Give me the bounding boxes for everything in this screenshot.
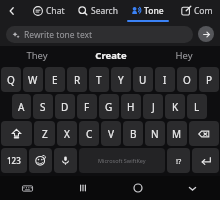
button[interactable]: Switch keyboard bbox=[0, 176, 55, 200]
button[interactable]: Enter bbox=[192, 148, 219, 173]
button[interactable]: Q bbox=[1, 67, 21, 92]
staticText: J bbox=[152, 100, 155, 114]
staticText: Search bbox=[91, 5, 118, 17]
staticText: L bbox=[194, 100, 200, 114]
button[interactable]: Search bbox=[73, 0, 122, 22]
button[interactable]: L bbox=[187, 94, 207, 119]
staticText: U bbox=[139, 73, 147, 87]
button[interactable]: Y bbox=[111, 67, 131, 92]
button[interactable]: Emoji bbox=[29, 148, 52, 173]
staticText: K bbox=[172, 100, 179, 114]
button[interactable]: Microphone bbox=[54, 148, 77, 173]
staticText: I bbox=[163, 73, 167, 87]
button[interactable]: P bbox=[199, 67, 219, 92]
staticText: T bbox=[96, 73, 102, 87]
button[interactable]: T bbox=[89, 67, 109, 92]
button[interactable]: Recents bbox=[55, 176, 110, 200]
staticText: Microsoft SwiftKey bbox=[98, 157, 146, 164]
staticText: P bbox=[206, 73, 213, 87]
button[interactable]: G bbox=[99, 94, 119, 119]
button[interactable]: C bbox=[79, 121, 99, 146]
staticText: M bbox=[172, 127, 182, 141]
button[interactable]: K bbox=[165, 94, 185, 119]
staticText: E bbox=[52, 73, 58, 87]
staticText: Create bbox=[95, 49, 127, 62]
staticText: Z bbox=[42, 127, 48, 141]
button[interactable]: W bbox=[23, 67, 43, 92]
button[interactable]: R bbox=[67, 67, 87, 92]
staticText: X bbox=[64, 127, 70, 141]
staticText: Rewrite tone text bbox=[24, 29, 93, 41]
button[interactable]: O bbox=[177, 67, 197, 92]
button[interactable]: Create bbox=[74, 46, 147, 65]
staticText: A bbox=[18, 100, 25, 114]
staticText: O bbox=[183, 73, 191, 87]
button[interactable]: Punctuation bbox=[167, 148, 190, 173]
button[interactable]: F bbox=[77, 94, 97, 119]
button[interactable]: Rewrite tone text bbox=[6, 26, 193, 43]
button[interactable]: Microsoft SwiftKey bbox=[79, 148, 165, 173]
button[interactable]: They bbox=[0, 46, 74, 65]
button[interactable]: N bbox=[145, 121, 165, 146]
button[interactable]: V bbox=[101, 121, 121, 146]
button[interactable]: Tone bbox=[122, 0, 173, 22]
button[interactable]: Shift bbox=[1, 121, 32, 146]
staticText: S bbox=[40, 100, 46, 114]
button[interactable]: Hey bbox=[147, 46, 220, 65]
staticText: Y bbox=[118, 73, 124, 87]
button[interactable]: Chat bbox=[24, 0, 73, 22]
staticText: They bbox=[26, 49, 48, 62]
button[interactable]: Backspace bbox=[189, 121, 219, 146]
staticText: G bbox=[105, 100, 113, 114]
button[interactable]: M bbox=[167, 121, 187, 146]
button[interactable]: E bbox=[45, 67, 65, 92]
button[interactable]: S bbox=[33, 94, 53, 119]
button[interactable]: H bbox=[121, 94, 141, 119]
staticText: N bbox=[151, 127, 159, 141]
staticText: D bbox=[61, 100, 69, 114]
staticText: Q bbox=[7, 73, 15, 87]
staticText: !? bbox=[176, 156, 182, 166]
button[interactable]: J bbox=[143, 94, 163, 119]
staticText: H bbox=[127, 100, 135, 114]
staticText: R bbox=[74, 73, 81, 87]
staticText: C bbox=[86, 127, 93, 141]
staticText: 123 bbox=[7, 155, 21, 166]
button[interactable]: Com bbox=[173, 0, 220, 22]
staticText: Chat bbox=[46, 5, 65, 17]
button[interactable]: X bbox=[57, 121, 77, 146]
button[interactable]: Back bbox=[0, 0, 24, 22]
staticText: Com bbox=[194, 5, 213, 17]
button[interactable]: A bbox=[12, 94, 31, 119]
button[interactable]: B bbox=[123, 121, 143, 146]
button[interactable]: D bbox=[55, 94, 75, 119]
button[interactable]: 123 bbox=[1, 148, 27, 173]
staticText: B bbox=[130, 127, 137, 141]
button[interactable]: Z bbox=[34, 121, 55, 146]
button[interactable]: Send bbox=[198, 26, 214, 42]
staticText: Tone bbox=[144, 5, 164, 17]
button[interactable]: I bbox=[155, 67, 175, 92]
button[interactable]: Home bbox=[110, 176, 165, 200]
staticText: F bbox=[84, 100, 90, 114]
staticText: Hey bbox=[175, 49, 193, 62]
button[interactable]: U bbox=[133, 67, 153, 92]
staticText: V bbox=[108, 127, 114, 141]
button[interactable]: Hide keyboard bbox=[165, 176, 220, 200]
staticText: W bbox=[28, 73, 38, 87]
